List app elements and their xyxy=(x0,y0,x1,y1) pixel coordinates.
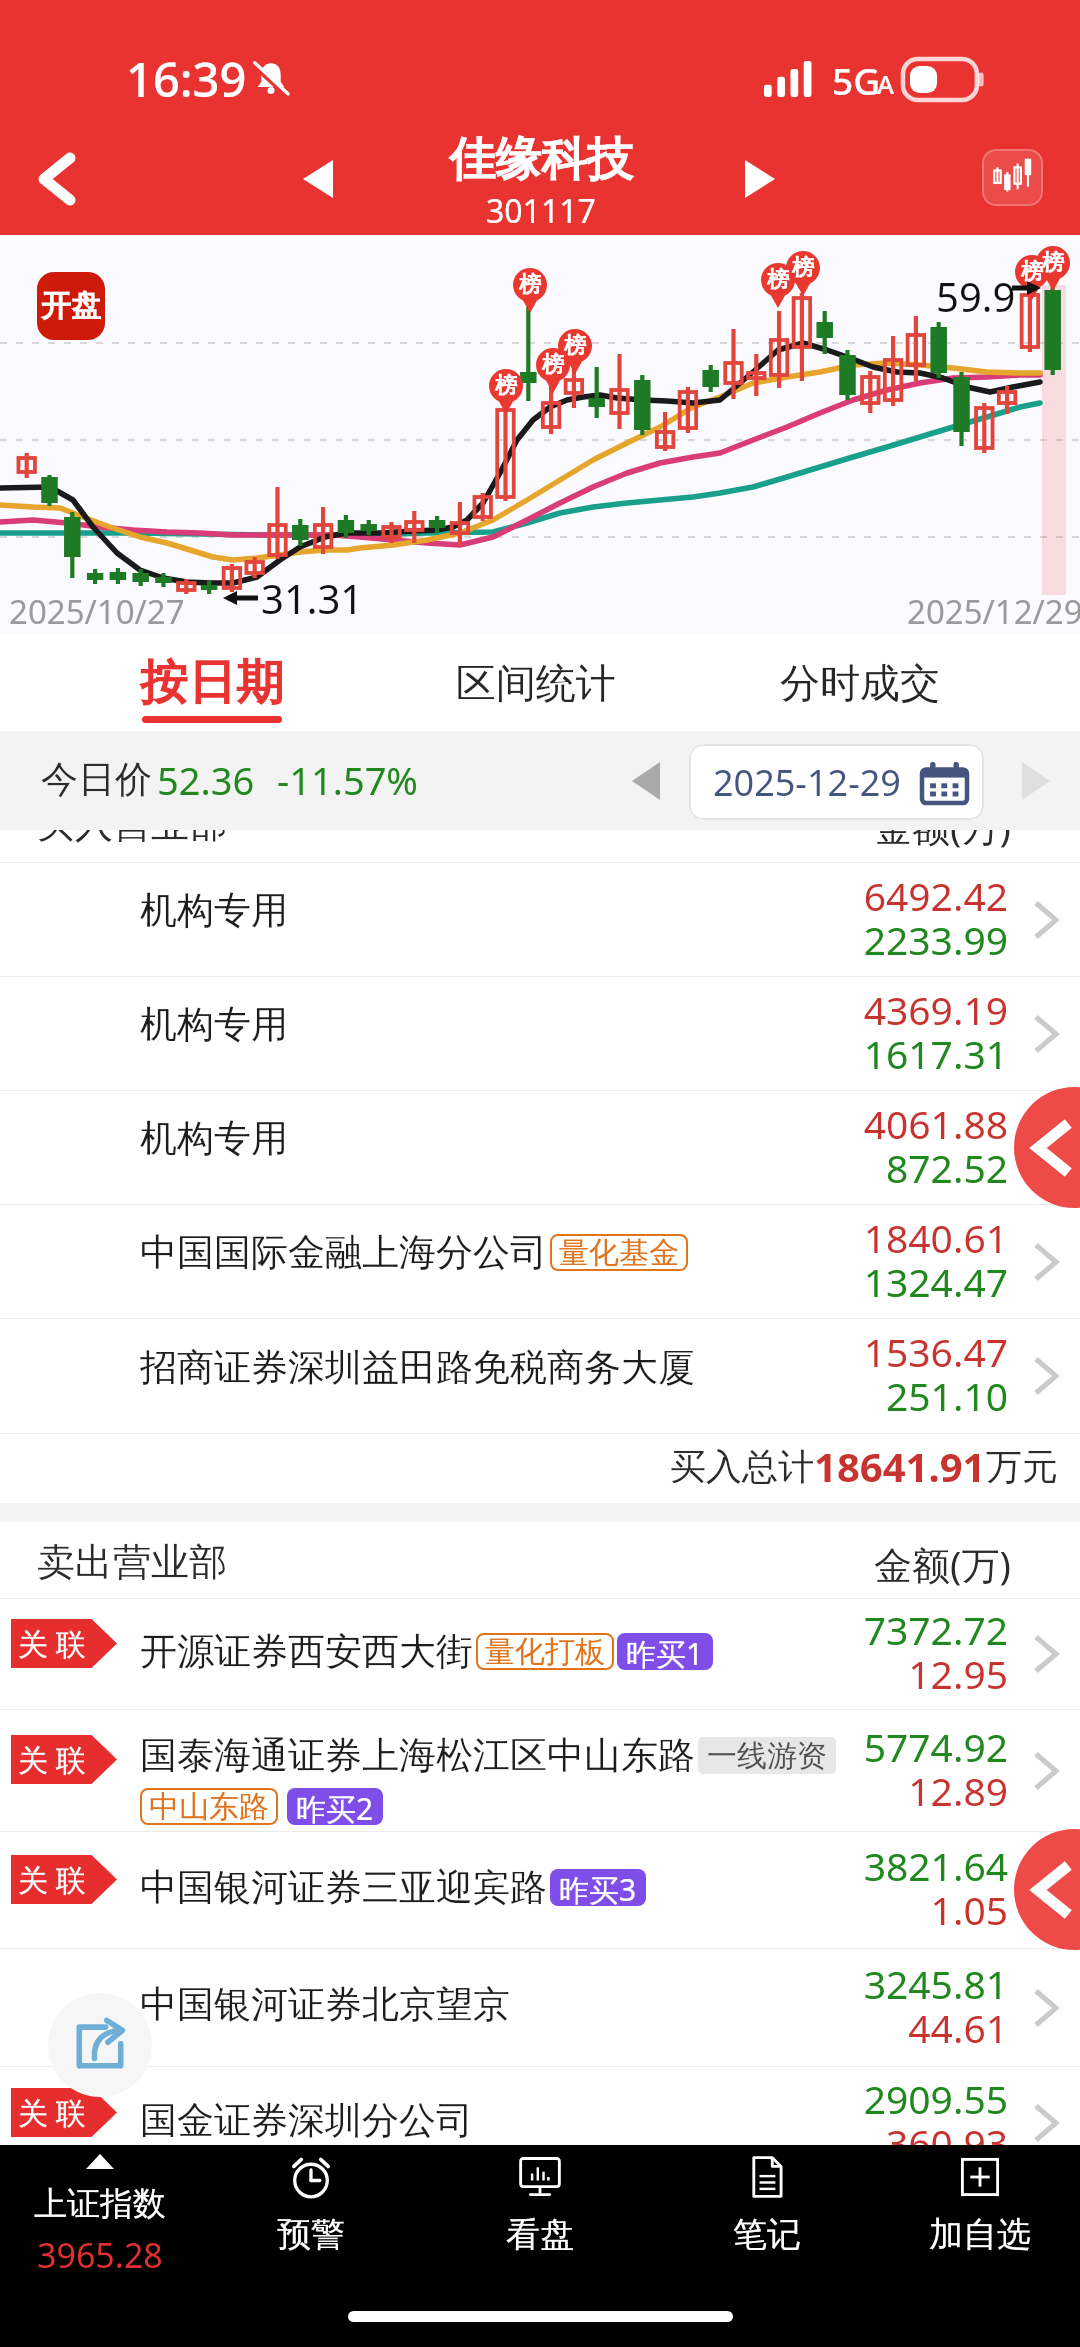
button[interactable]: Next day xyxy=(1010,755,1062,807)
staticText: 一线游资 xyxy=(707,1737,827,1774)
button[interactable]: 招商证券深圳益田路免税商务大厦 xyxy=(0,1319,1080,1433)
staticText: 量化打板 xyxy=(485,1633,605,1670)
staticText: 关 联 xyxy=(18,2092,86,2133)
staticText: 昨买1 xyxy=(626,1633,704,1670)
button[interactable]: Previous day xyxy=(620,755,672,807)
staticText: -11.57% xyxy=(277,754,418,806)
button[interactable]: 关 联 xyxy=(0,2067,1080,2179)
staticText: 2233.99 xyxy=(863,913,1008,966)
staticText: 分时成交 xyxy=(780,658,940,708)
staticText: 中国银河证券北京望京 xyxy=(140,1981,510,2028)
staticText: 榜 xyxy=(767,266,789,294)
staticText: 昨买3 xyxy=(559,1869,637,1906)
staticText: 国泰海通证券上海松江区中山东路 xyxy=(140,1732,695,1779)
staticText: 3245.81 xyxy=(863,1957,1008,2010)
staticText: A xyxy=(877,66,895,101)
button[interactable]: Previous stock xyxy=(272,134,364,224)
button[interactable]: 中国银河证券北京望京 xyxy=(0,1949,1080,2066)
staticText: 今日价 xyxy=(41,756,152,803)
staticText: 59.9 xyxy=(936,269,1016,323)
staticText: 301117 xyxy=(486,189,596,233)
staticText: 12.89 xyxy=(908,1764,1008,1817)
button[interactable]: 机构专用 xyxy=(0,863,1080,976)
staticText: 872.52 xyxy=(886,1141,1008,1194)
button[interactable]: Share xyxy=(48,1993,152,2097)
button[interactable]: 中国国际金融上海分公司 xyxy=(0,1205,1080,1318)
staticText: 2909.55 xyxy=(863,2072,1008,2125)
button[interactable]: Candlestick chart xyxy=(982,149,1043,206)
staticText: 1.05 xyxy=(930,1883,1008,1936)
staticText: 3965.28 xyxy=(37,2232,163,2278)
button[interactable]: 笔记 xyxy=(648,2145,864,2295)
button[interactable]: 关 联 xyxy=(0,1710,1080,1831)
staticText: 1617.31 xyxy=(863,1027,1008,1080)
button[interactable]: 分时成交 xyxy=(698,634,1022,731)
staticText: 金额(万) xyxy=(874,1538,1011,1590)
staticText: 44.61 xyxy=(908,2001,1008,2054)
staticText: 16:39 xyxy=(126,47,247,111)
button[interactable]: 看盘 xyxy=(432,2145,648,2295)
staticText: 关 联 xyxy=(18,1859,86,1900)
button[interactable]: Show panel xyxy=(1014,1829,1080,1950)
button[interactable]: 预警 xyxy=(216,2145,432,2295)
staticText: 5G xyxy=(832,55,881,105)
button[interactable]: Opening price tag xyxy=(37,272,105,340)
staticText: 关 联 xyxy=(18,1739,86,1780)
staticText: 按日期 xyxy=(140,653,284,713)
staticText: 买入营业部 xyxy=(37,800,227,848)
staticText: 榜 xyxy=(542,351,564,379)
staticText: 榜 xyxy=(564,332,586,360)
staticText: 18641.91 xyxy=(814,1439,986,1493)
button[interactable]: 区间统计 xyxy=(374,634,698,731)
button[interactable]: 机构专用 xyxy=(0,1091,1080,1204)
staticText: 4061.88 xyxy=(863,1097,1008,1150)
staticText: 7372.72 xyxy=(863,1603,1008,1656)
staticText: 机构专用 xyxy=(140,1115,288,1162)
button[interactable]: 机构专用 xyxy=(0,977,1080,1090)
staticText: 1324.47 xyxy=(863,1255,1008,1308)
staticText: 榜 xyxy=(495,372,517,400)
staticText: 开盘 xyxy=(41,287,101,325)
staticText: 榜 xyxy=(1042,249,1064,277)
button[interactable]: 佳缘科技 xyxy=(381,131,701,233)
staticText: 2025-12-29 xyxy=(713,758,901,807)
staticText: 机构专用 xyxy=(140,887,288,934)
button[interactable]: Next stock xyxy=(714,134,806,224)
button[interactable]: 按日期 xyxy=(50,634,374,731)
button[interactable]: 加自选 xyxy=(864,2145,1080,2295)
staticText: 榜 xyxy=(1021,258,1043,286)
button[interactable]: 关 联 xyxy=(0,1832,1080,1948)
staticText: 榜 xyxy=(519,271,541,299)
staticText: 看盘 xyxy=(506,2213,574,2256)
button[interactable]: 上证指数 xyxy=(0,2145,216,2295)
staticText: 万元 xyxy=(986,1444,1058,1489)
staticText: 国金证券深圳分公司 xyxy=(140,2097,473,2144)
staticText: 上证指数 xyxy=(34,2183,166,2225)
staticText: 中国银河证券三亚迎宾路 xyxy=(140,1864,547,1911)
button[interactable]: Show panel xyxy=(1014,1087,1080,1208)
staticText: 360.93 xyxy=(886,2116,1008,2169)
staticText: 6492.42 xyxy=(863,869,1008,922)
staticText: 5774.92 xyxy=(863,1720,1008,1773)
staticText: 1536.47 xyxy=(863,1325,1008,1378)
button[interactable]: 2025-12-29 xyxy=(689,744,984,820)
staticText: 金额(万) xyxy=(874,800,1011,852)
staticText: 4369.19 xyxy=(863,983,1008,1036)
staticText: 买入总计 xyxy=(670,1444,814,1489)
staticText: 中国国际金融上海分公司 xyxy=(140,1229,547,1276)
button[interactable]: Back xyxy=(8,134,104,224)
staticText: 2025/12/29 xyxy=(907,589,1080,634)
staticText: 卖出营业部 xyxy=(37,1538,227,1586)
staticText: 量化基金 xyxy=(559,1234,679,1271)
staticText: 区间统计 xyxy=(456,658,616,708)
staticText: 31.31 xyxy=(261,571,364,625)
staticText: 开源证券西安西大街 xyxy=(140,1628,473,1675)
staticText: 251.10 xyxy=(886,1369,1008,1422)
staticText: 佳缘科技 xyxy=(449,131,633,189)
staticText: 昨买2 xyxy=(296,1788,374,1825)
staticText: 预警 xyxy=(277,2213,345,2256)
staticText: 中山东路 xyxy=(149,1788,269,1825)
staticText: 机构专用 xyxy=(140,1001,288,1048)
button[interactable]: 关 联 xyxy=(0,1599,1080,1709)
staticText: 榜 xyxy=(792,254,814,282)
